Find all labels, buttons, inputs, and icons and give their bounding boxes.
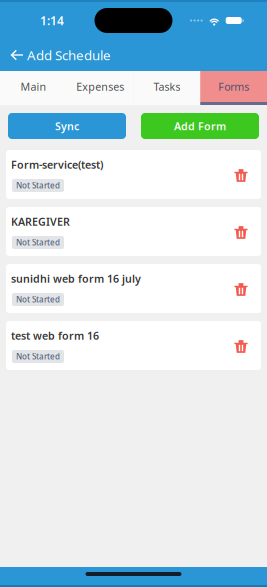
button[interactable]: KAREGIVER: [6, 207, 261, 256]
staticText: Add Form: [174, 119, 226, 133]
button[interactable]: Tasks: [133, 71, 200, 105]
button[interactable]: Delete: [229, 277, 253, 301]
button[interactable]: Add Form: [141, 113, 259, 139]
staticText: Not Started: [16, 351, 60, 362]
button[interactable]: Expenses: [67, 71, 134, 105]
button[interactable]: Form-service(test): [6, 150, 261, 199]
staticText: KAREGIVER: [11, 214, 70, 229]
staticText: Add Schedule: [27, 46, 111, 64]
staticText: Main: [20, 79, 46, 94]
staticText: Form-service(test): [11, 157, 103, 172]
staticText: Forms: [218, 79, 249, 94]
button[interactable]: Sync: [8, 113, 126, 139]
staticText: Not Started: [16, 180, 60, 191]
staticText: Not Started: [16, 294, 60, 305]
button[interactable]: test web form 16: [6, 321, 261, 370]
staticText: Sync: [55, 119, 79, 133]
button[interactable]: sunidhi web form 16 july: [6, 264, 261, 313]
staticText: 1:14: [40, 12, 64, 28]
staticText: Tasks: [153, 79, 180, 94]
staticText: Not Started: [16, 237, 60, 248]
staticText: Expenses: [76, 79, 124, 94]
button[interactable]: Forms: [200, 71, 267, 105]
button[interactable]: Delete: [229, 163, 253, 187]
button[interactable]: Delete: [229, 220, 253, 244]
button[interactable]: Delete: [229, 334, 253, 358]
staticText: sunidhi web form 16 july: [11, 271, 141, 286]
staticText: test web form 16: [11, 328, 99, 343]
button[interactable]: Back: [7, 41, 27, 69]
button[interactable]: Main: [0, 71, 67, 105]
